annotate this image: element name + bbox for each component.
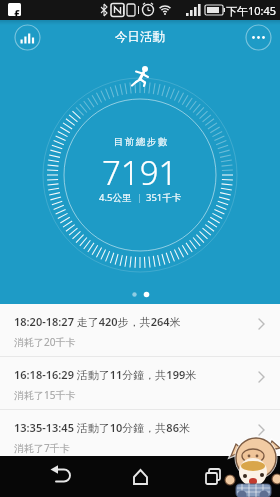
button[interactable]: [187, 456, 280, 497]
staticText: 13:35-13:45 活動了10分鐘，共86米: [14, 420, 190, 435]
button[interactable]: 18:20-18:27 走了420步，共264米: [0, 304, 280, 356]
button[interactable]: 16:18-16:29 活動了11分鐘，共199米: [0, 357, 280, 409]
staticText: 目前總步數: [113, 136, 168, 148]
staticText: 4.5公里: [99, 191, 132, 204]
staticText: 消耗了15千卡: [14, 388, 76, 402]
button[interactable]: [94, 456, 187, 497]
staticText: 18:20-18:27 走了420步，共264米: [14, 314, 181, 329]
staticText: 消耗了7千卡: [14, 441, 70, 455]
staticText: 7191: [102, 150, 178, 195]
button[interactable]: [14, 24, 41, 51]
staticText: 今日活動: [115, 29, 165, 45]
button[interactable]: [0, 456, 94, 497]
staticText: 下午10:45: [226, 3, 277, 18]
button[interactable]: [245, 24, 272, 51]
staticText: 16:18-16:29 活動了11分鐘，共199米: [14, 367, 197, 382]
staticText: 消耗了20千卡: [14, 335, 76, 349]
staticText: 351千卡: [146, 191, 182, 204]
button[interactable]: 13:35-13:45 活動了10分鐘，共86米: [0, 410, 280, 462]
staticText: f: [14, 6, 20, 16]
